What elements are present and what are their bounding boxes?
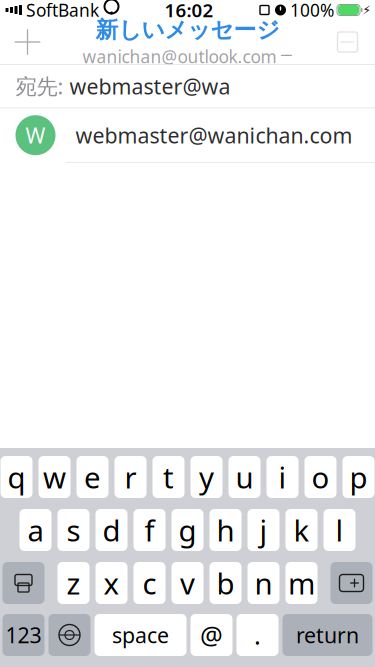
staticText: i <box>278 457 286 496</box>
staticText: g <box>178 510 196 549</box>
button[interactable]: m <box>285 562 317 604</box>
button[interactable]: n <box>247 562 279 604</box>
staticText: SoftBank <box>26 0 99 21</box>
staticText: a <box>27 510 43 549</box>
staticText: . <box>254 618 261 652</box>
staticText: W <box>25 121 45 149</box>
staticText: webmaster@wa <box>63 72 230 100</box>
button[interactable]: 送信 <box>319 20 375 64</box>
button[interactable]: e <box>76 456 108 498</box>
staticText: d <box>102 510 120 549</box>
button[interactable]: c <box>133 562 165 604</box>
staticText: y <box>199 457 214 496</box>
button[interactable]: t <box>152 456 184 498</box>
staticText: @ <box>200 618 223 652</box>
staticText: k <box>293 510 309 549</box>
button[interactable]: return <box>282 614 372 656</box>
button[interactable]: . <box>236 614 278 656</box>
button[interactable]: u <box>228 456 260 498</box>
staticText: j <box>259 510 267 549</box>
button[interactable]: space <box>94 614 186 656</box>
button[interactable]: W <box>0 108 375 163</box>
staticText: b <box>216 563 234 602</box>
staticText: q <box>7 457 25 496</box>
staticText: s <box>66 510 80 549</box>
button[interactable]: キーボードを切り替え <box>48 614 90 656</box>
button[interactable]: q <box>0 456 32 498</box>
staticText: e <box>84 457 101 496</box>
staticText: o <box>311 457 329 496</box>
button[interactable]: @ <box>190 614 232 656</box>
button[interactable]: f <box>133 509 165 551</box>
staticText: r <box>124 457 136 496</box>
button[interactable]: 123 <box>2 614 44 656</box>
staticText: 新しいメッセージ <box>95 16 279 44</box>
staticText: space <box>112 621 169 649</box>
staticText: 16:02 <box>164 0 213 22</box>
staticText: l <box>335 510 343 549</box>
staticText: w <box>43 457 66 496</box>
button[interactable]: b <box>209 562 241 604</box>
button[interactable]: j <box>247 509 279 551</box>
button[interactable]: w <box>38 456 70 498</box>
button[interactable]: o <box>304 456 336 498</box>
staticText: 100% <box>290 0 334 21</box>
button[interactable]: 宛先: <box>0 65 375 108</box>
button[interactable]: g <box>171 509 203 551</box>
button[interactable]: v <box>171 562 203 604</box>
staticText: c <box>142 563 156 602</box>
button[interactable]: k <box>285 509 317 551</box>
staticText: x <box>103 563 119 602</box>
button[interactable]: r <box>114 456 146 498</box>
button[interactable]: l <box>323 509 355 551</box>
staticText: z <box>66 563 80 602</box>
button[interactable]: 閉じる <box>0 20 55 64</box>
button[interactable]: x <box>95 562 127 604</box>
button[interactable]: シフト <box>2 562 44 604</box>
button[interactable]: i <box>266 456 298 498</box>
button[interactable]: 削除 <box>330 562 372 604</box>
button[interactable]: d <box>95 509 127 551</box>
staticText: v <box>180 563 195 602</box>
staticText: wanichan@outlook.com <box>82 45 276 68</box>
button[interactable]: p <box>342 456 374 498</box>
staticText: t <box>163 457 174 496</box>
staticText: 123 <box>5 621 41 649</box>
staticText: p <box>349 457 367 496</box>
button[interactable]: a <box>19 509 51 551</box>
button[interactable]: z <box>57 562 89 604</box>
staticText: n <box>254 563 272 602</box>
staticText: h <box>216 510 234 549</box>
staticText: 宛先: <box>15 72 63 100</box>
staticText: u <box>235 457 253 496</box>
staticText: f <box>144 510 154 549</box>
button[interactable]: h <box>209 509 241 551</box>
staticText: return <box>296 621 359 649</box>
button[interactable]: s <box>57 509 89 551</box>
staticText: webmaster@wanichan.com <box>75 121 352 149</box>
button[interactable]: y <box>190 456 222 498</box>
staticText: m <box>288 563 315 602</box>
staticText: ⚡︎ <box>362 3 370 17</box>
